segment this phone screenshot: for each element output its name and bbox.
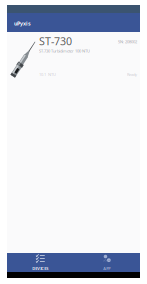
button[interactable]: ST-730 <box>7 32 140 82</box>
staticText: ST-730 Turbidimeter 100 NTU <box>39 48 90 53</box>
staticText: ST-730 <box>39 34 72 48</box>
staticText: uPyxis <box>14 20 31 27</box>
staticText: APP <box>103 266 110 271</box>
button[interactable]: DEVICES <box>7 253 73 272</box>
staticText: DEVICES <box>32 266 48 271</box>
staticText: Ready <box>127 72 137 77</box>
button[interactable]: APP <box>73 253 140 272</box>
staticText: 10.1 NTU <box>39 72 56 77</box>
staticText: SN: 208002 <box>118 39 137 44</box>
